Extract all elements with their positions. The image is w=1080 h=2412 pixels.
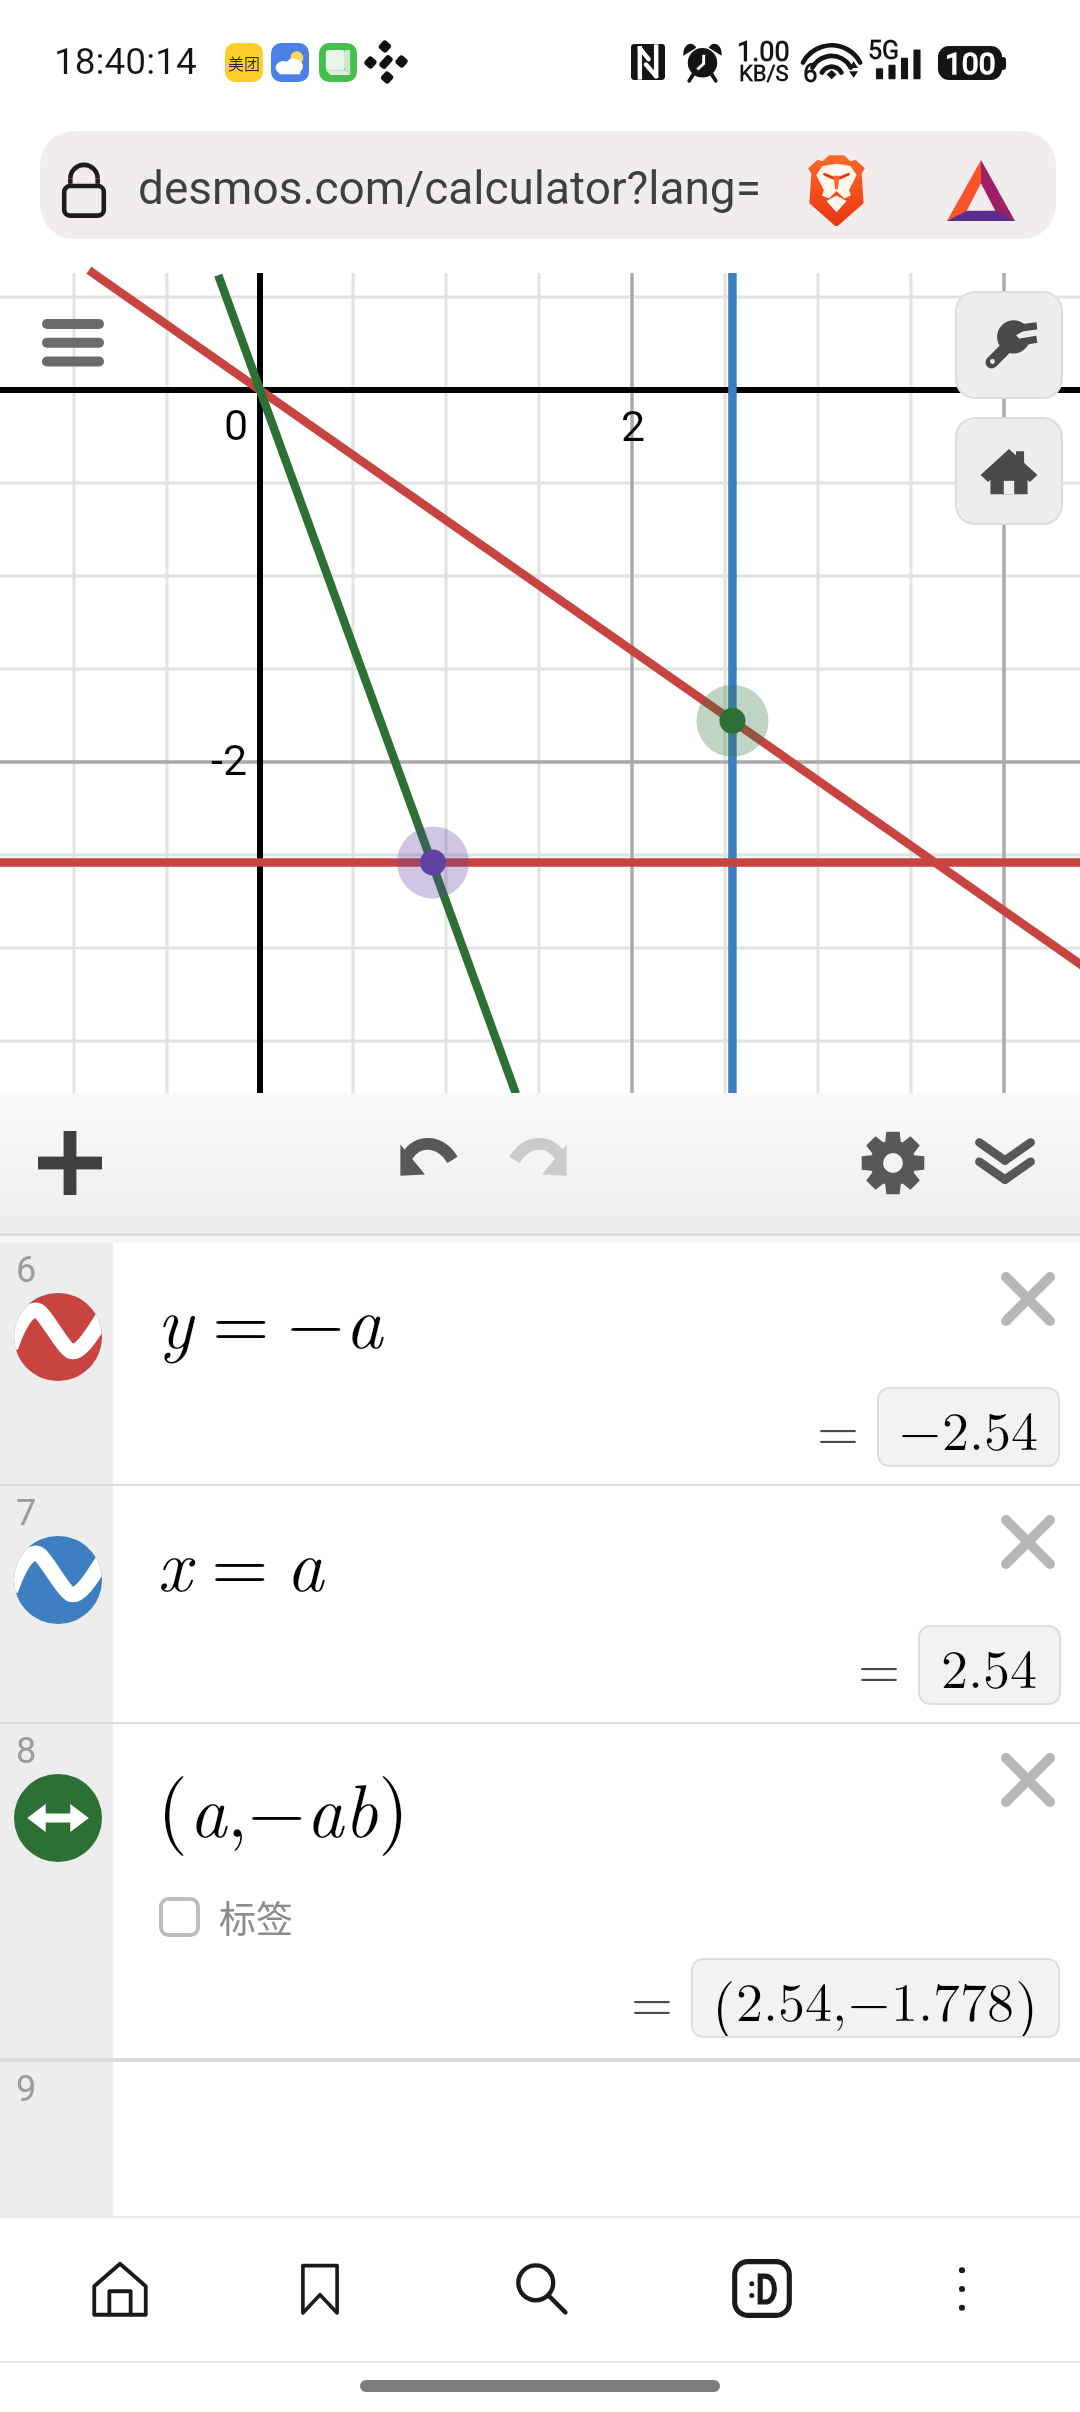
staticText: ab: [306, 1754, 378, 1859]
staticText: −: [248, 1754, 306, 1859]
staticText: (: [712, 1958, 736, 2038]
button[interactable]: Home: [20, 2216, 220, 2361]
button[interactable]: Graph settings: [841, 1093, 945, 1233]
staticText: 美团: [228, 51, 261, 74]
staticText: =: [211, 1508, 269, 1613]
staticText: y: [157, 1265, 193, 1370]
button[interactable]: More options: [862, 2216, 1062, 2361]
staticText: =: [858, 1627, 901, 1704]
button[interactable]: (: [691, 1958, 1060, 2038]
button[interactable]: Search: [442, 2216, 642, 2361]
button[interactable]: Bookmarks: [220, 2216, 420, 2361]
staticText: ): [1015, 1958, 1039, 2038]
button[interactable]: Redo: [490, 1093, 594, 1233]
button[interactable]: −: [877, 1387, 1060, 1467]
button[interactable]: 6: [0, 1243, 1080, 1486]
staticText: 8: [16, 1730, 37, 1772]
staticText: 5G: [868, 36, 900, 65]
button[interactable]: Undo: [373, 1093, 477, 1233]
staticText: =: [631, 1960, 674, 2037]
staticText: 1.778: [891, 1960, 1015, 2037]
staticText: x: [157, 1508, 192, 1613]
button[interactable]: 标签: [159, 1890, 293, 1944]
staticText: 2.54: [941, 1627, 1038, 1704]
button[interactable]: Collapse list: [953, 1093, 1057, 1233]
staticText: a: [345, 1265, 383, 1370]
button[interactable]: Brave Shields: [805, 153, 868, 229]
button[interactable]: Delete expression 8: [980, 1732, 1076, 1828]
staticText: =: [817, 1389, 860, 1466]
staticText: 0: [224, 400, 249, 450]
staticText: 9: [16, 2068, 37, 2110]
staticText: a: [189, 1754, 227, 1859]
staticText: −: [899, 1389, 942, 1466]
staticText: 2: [621, 401, 646, 451]
button[interactable]: 2.54: [918, 1625, 1061, 1705]
staticText: 7: [16, 1492, 37, 1534]
staticText: 100: [945, 46, 996, 80]
button[interactable]: Delete expression 7: [980, 1494, 1076, 1590]
staticText: −: [848, 1960, 891, 2037]
staticText: (: [157, 1746, 189, 1859]
staticText: −: [287, 1265, 345, 1370]
button[interactable]: Delete expression 6: [980, 1251, 1076, 1347]
staticText: KB/S: [739, 61, 789, 87]
staticText: 1.00: [737, 36, 790, 68]
staticText: -2: [211, 735, 248, 785]
staticText: 2.54,: [736, 1960, 848, 2037]
staticText: ,: [227, 1754, 248, 1859]
button[interactable]: Brave Rewards: [947, 160, 1015, 221]
button[interactable]: 8: [0, 1724, 1080, 2060]
button[interactable]: Tabs: [662, 2216, 862, 2361]
staticText: 2.54: [942, 1389, 1039, 1466]
staticText: 6: [16, 1249, 37, 1291]
button[interactable]: Add expression: [18, 1093, 122, 1233]
button[interactable]: Graph settings: [955, 291, 1063, 399]
staticText: a: [286, 1508, 324, 1613]
button[interactable]: Reset view: [955, 417, 1063, 525]
button[interactable]: [40, 131, 1056, 239]
staticText: =: [212, 1265, 270, 1370]
staticText: 标签: [219, 1890, 293, 1944]
button[interactable]: Menu: [30, 300, 116, 386]
staticText: 18:40:14: [54, 40, 197, 83]
staticText: desmos.com/calculator?lang=: [138, 161, 761, 215]
button[interactable]: 7: [0, 1486, 1080, 1724]
staticText: ): [378, 1746, 410, 1859]
staticText: 6: [803, 58, 818, 88]
